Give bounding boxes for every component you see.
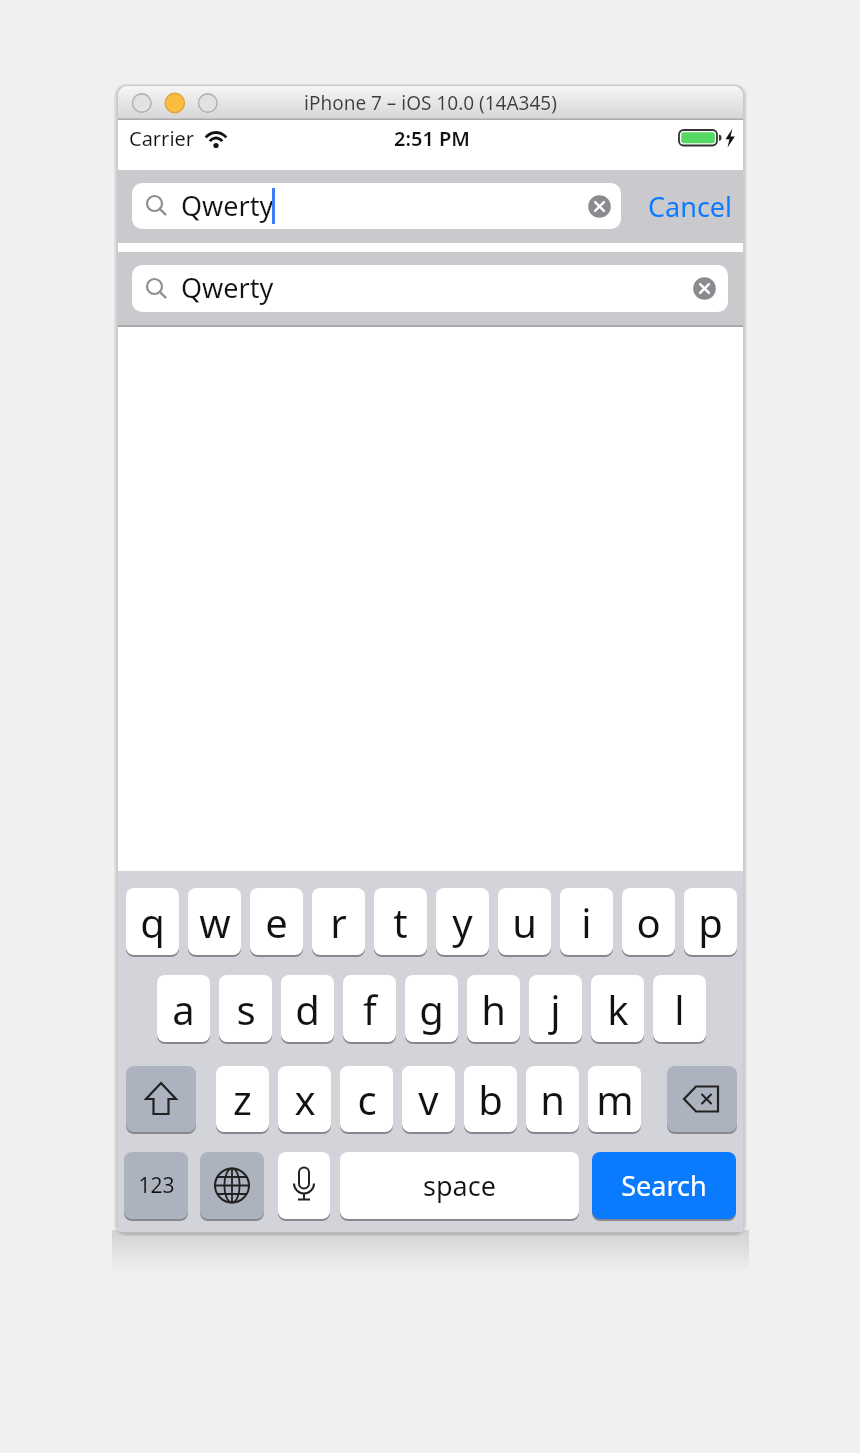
button[interactable]: b (464, 1066, 517, 1132)
staticText: w (199, 895, 231, 949)
button[interactable]: e (250, 888, 303, 955)
staticText: 123 (138, 1171, 175, 1200)
button[interactable]: f (343, 975, 396, 1042)
button[interactable] (588, 195, 611, 218)
staticText: z (233, 1072, 252, 1126)
staticText: o (636, 895, 661, 949)
staticText: k (607, 982, 629, 1036)
button[interactable]: i (560, 888, 613, 955)
button[interactable]: u (498, 888, 551, 955)
button[interactable]: g (405, 975, 458, 1042)
staticText: t (393, 895, 408, 949)
button[interactable]: h (467, 975, 520, 1042)
staticText: 2:51 PM (394, 125, 470, 152)
staticText: h (481, 982, 506, 1036)
staticText: space (423, 1167, 496, 1204)
staticText: d (295, 982, 320, 1036)
button[interactable] (278, 1152, 330, 1219)
button[interactable]: z (216, 1066, 269, 1132)
button[interactable] (200, 1152, 264, 1219)
button[interactable]: Search (592, 1152, 736, 1219)
button[interactable]: o (622, 888, 675, 955)
button[interactable]: Qwerty (132, 183, 621, 229)
staticText: u (512, 895, 537, 949)
staticText: n (540, 1072, 565, 1126)
staticText: Qwerty (181, 269, 274, 306)
staticText: p (698, 895, 723, 949)
button[interactable]: m (588, 1066, 641, 1132)
button[interactable]: x (278, 1066, 331, 1132)
button[interactable]: Qwerty (132, 265, 728, 312)
button[interactable] (667, 1066, 737, 1132)
staticText: e (265, 895, 288, 949)
button[interactable]: s (219, 975, 272, 1042)
button[interactable] (126, 1066, 196, 1132)
button[interactable]: r (312, 888, 365, 955)
button[interactable]: c (340, 1066, 393, 1132)
staticText: s (236, 982, 256, 1036)
staticText: q (140, 895, 165, 949)
staticText: m (596, 1072, 634, 1126)
button[interactable]: space (340, 1152, 579, 1219)
staticText: x (294, 1072, 316, 1126)
button[interactable]: q (126, 888, 179, 955)
staticText: iPhone 7 – iOS 10.0 (14A345) (304, 90, 557, 116)
staticText: Cancel (648, 188, 733, 225)
button[interactable]: v (402, 1066, 455, 1132)
staticText: c (357, 1072, 377, 1126)
button[interactable]: t (374, 888, 427, 955)
button[interactable]: w (188, 888, 241, 955)
button[interactable]: d (281, 975, 334, 1042)
staticText: r (330, 895, 347, 949)
staticText: a (172, 982, 195, 1036)
staticText: Search (621, 1167, 707, 1204)
staticText: l (674, 982, 685, 1036)
staticText: b (478, 1072, 503, 1126)
staticText: f (363, 982, 377, 1036)
staticText: v (418, 1072, 439, 1126)
button[interactable]: l (653, 975, 706, 1042)
staticText: j (550, 982, 561, 1036)
button[interactable]: Cancel (637, 170, 743, 243)
button[interactable]: 123 (124, 1152, 188, 1219)
staticText: Qwerty (181, 187, 274, 224)
button[interactable]: j (529, 975, 582, 1042)
button[interactable]: n (526, 1066, 579, 1132)
staticText: Carrier (129, 125, 195, 152)
staticText: i (581, 895, 592, 949)
staticText: g (419, 982, 444, 1036)
button[interactable] (693, 277, 716, 300)
button[interactable]: y (436, 888, 489, 955)
button[interactable]: a (157, 975, 210, 1042)
button[interactable]: p (684, 888, 737, 955)
button[interactable]: k (591, 975, 644, 1042)
staticText: y (452, 895, 473, 949)
